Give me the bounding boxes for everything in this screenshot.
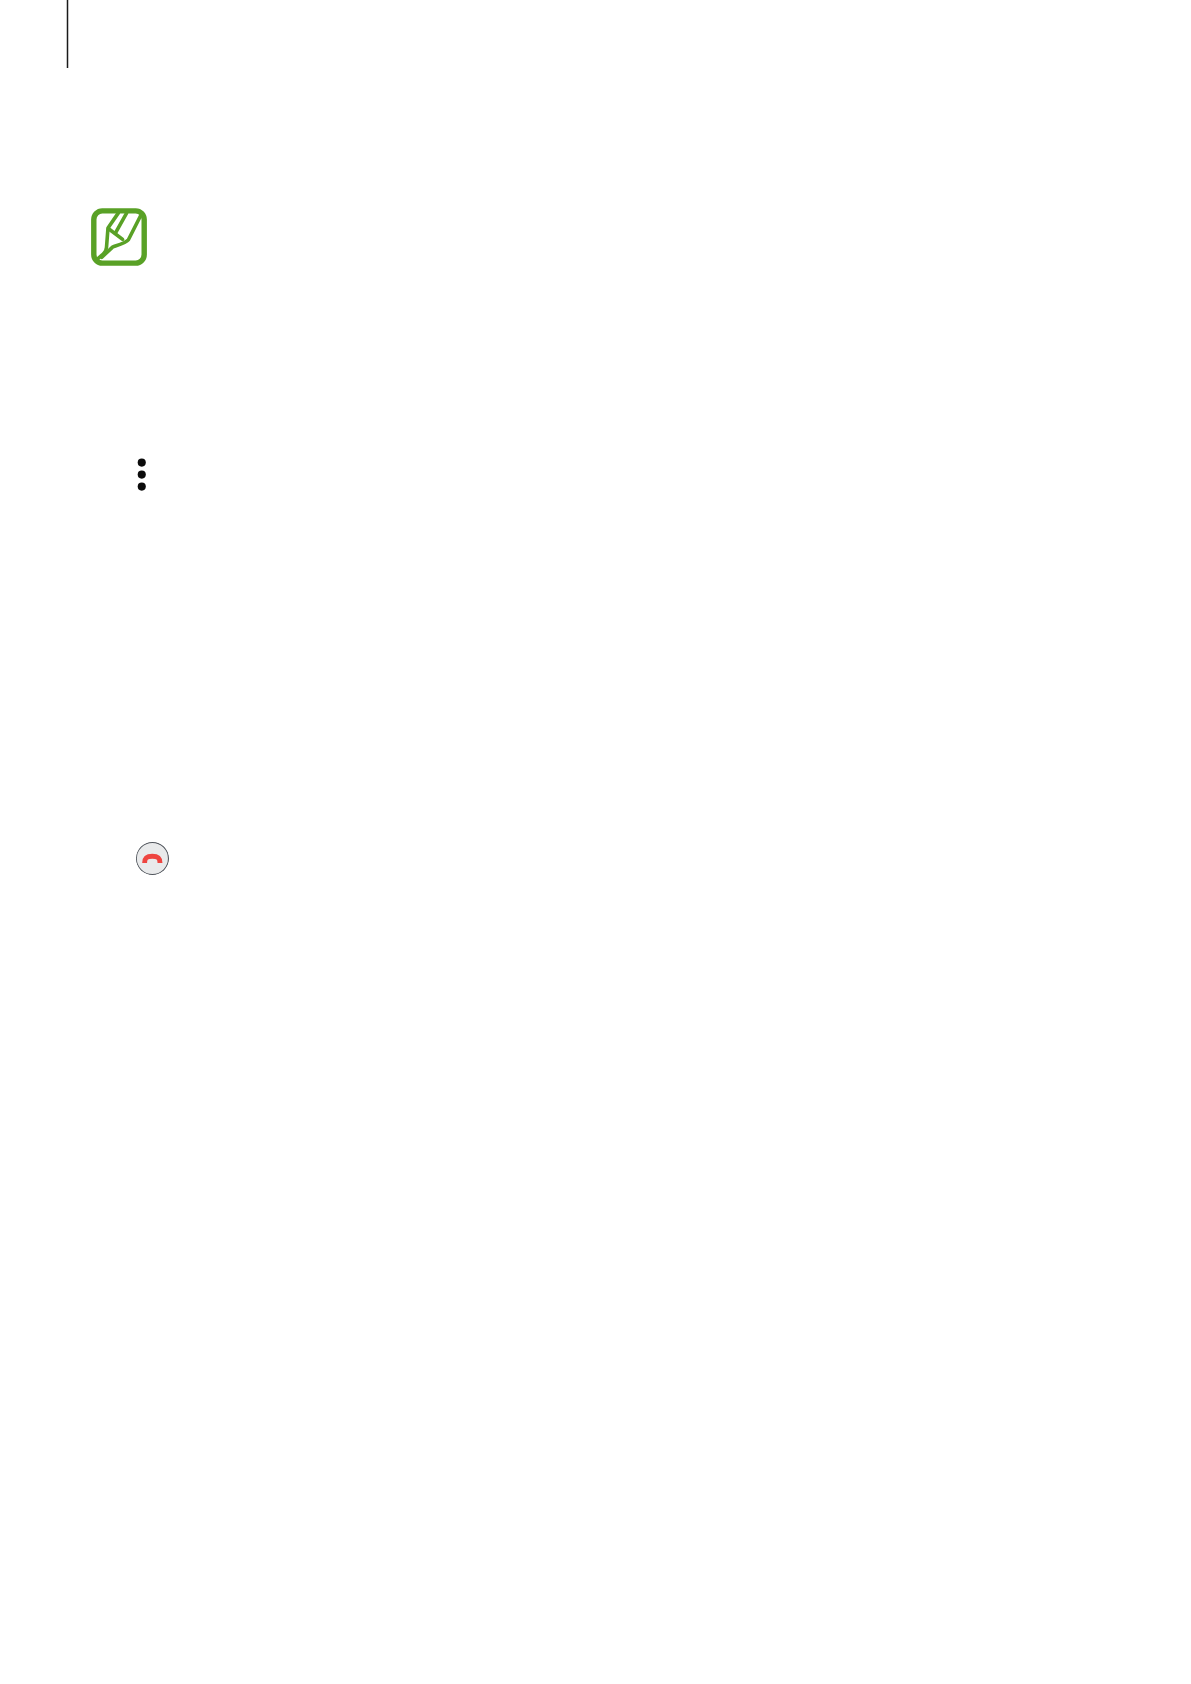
button[interactable]: End call bbox=[136, 842, 169, 875]
button[interactable]: Samsung Notes bbox=[91, 208, 147, 266]
button[interactable]: More options bbox=[130, 450, 154, 496]
